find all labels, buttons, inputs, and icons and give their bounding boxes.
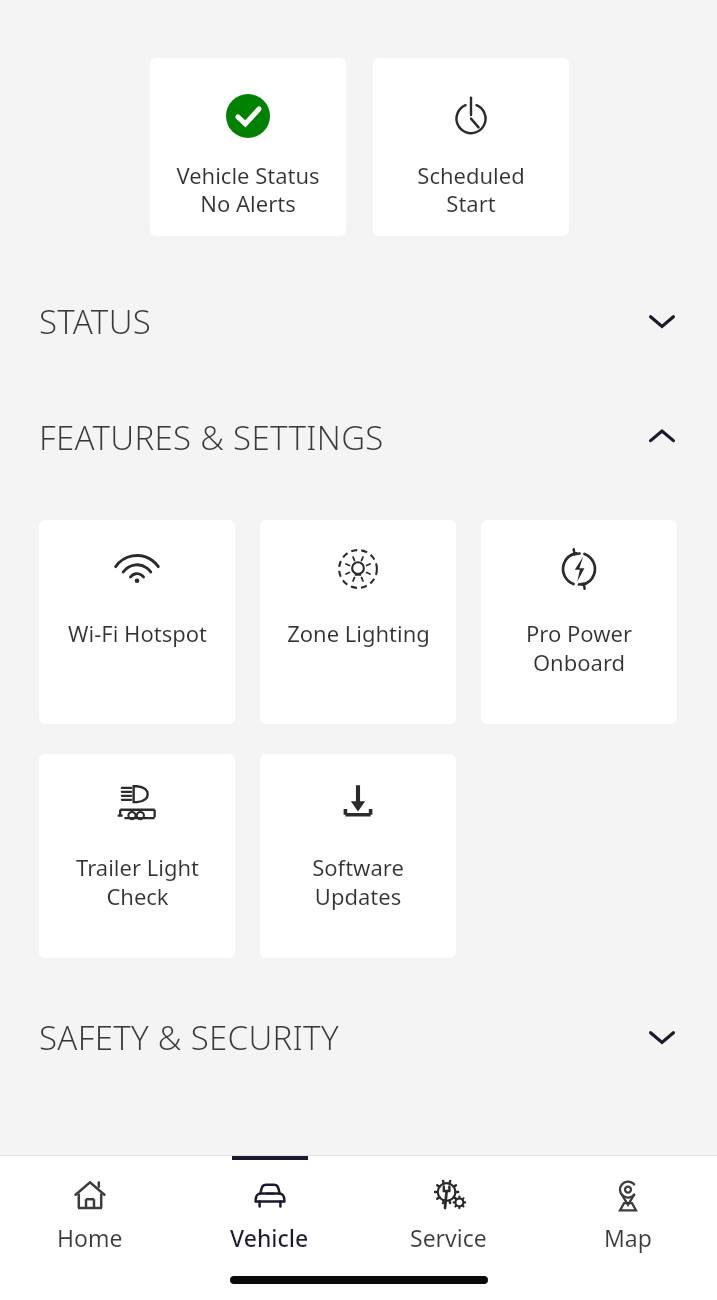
button[interactable]: Software Updates: [260, 754, 456, 958]
other: Wi-Fi Hotspot: [116, 548, 158, 590]
staticText: Vehicle Status No Alerts: [176, 160, 320, 218]
button[interactable]: Vehicle: [180, 1156, 359, 1300]
staticText: Home: [57, 1222, 123, 1253]
staticText: SAFETY & SECURITY: [39, 1015, 339, 1060]
other: Zone Lighting: [337, 548, 379, 590]
button[interactable]: STATUS: [0, 294, 717, 348]
other: Expand: [647, 1022, 677, 1052]
other: No alerts: [226, 94, 270, 138]
staticText: Software Updates: [312, 852, 404, 911]
staticText: Vehicle: [230, 1222, 309, 1253]
staticText: Wi-Fi Hotspot: [68, 618, 207, 648]
other: Scheduled start: [449, 94, 493, 138]
staticText: Map: [604, 1222, 652, 1253]
staticText: Service: [410, 1222, 487, 1253]
staticText: Pro Power Onboard: [526, 618, 632, 677]
button[interactable]: Trailer Light Check: [39, 754, 235, 958]
staticText: STATUS: [39, 299, 152, 344]
other: Pro Power Onboard: [558, 548, 600, 590]
button[interactable]: Wi-Fi Hotspot: [39, 520, 235, 724]
staticText: Scheduled Start: [417, 160, 525, 218]
other: Map: [608, 1176, 648, 1216]
button[interactable]: Pro Power Onboard: [481, 520, 677, 724]
button[interactable]: SAFETY & SECURITY: [0, 1010, 717, 1064]
other: Home: [70, 1176, 110, 1216]
button[interactable]: Map: [538, 1156, 717, 1300]
staticText: Zone Lighting: [287, 618, 430, 648]
button[interactable]: Home: [0, 1156, 180, 1300]
other: Service: [429, 1176, 469, 1216]
other: Trailer Light Check: [116, 782, 158, 824]
staticText: Trailer Light Check: [76, 852, 199, 911]
button[interactable]: Zone Lighting: [260, 520, 456, 724]
button[interactable]: Service: [359, 1156, 538, 1300]
button[interactable]: No alerts: [150, 58, 346, 236]
other: Vehicle: [250, 1176, 290, 1216]
other: Expand: [647, 306, 677, 336]
other: Software Updates: [337, 782, 379, 824]
staticText: FEATURES & SETTINGS: [39, 415, 384, 460]
other: Collapse: [647, 422, 677, 452]
button[interactable]: FEATURES & SETTINGS: [0, 410, 717, 464]
button[interactable]: Scheduled start: [373, 58, 569, 236]
